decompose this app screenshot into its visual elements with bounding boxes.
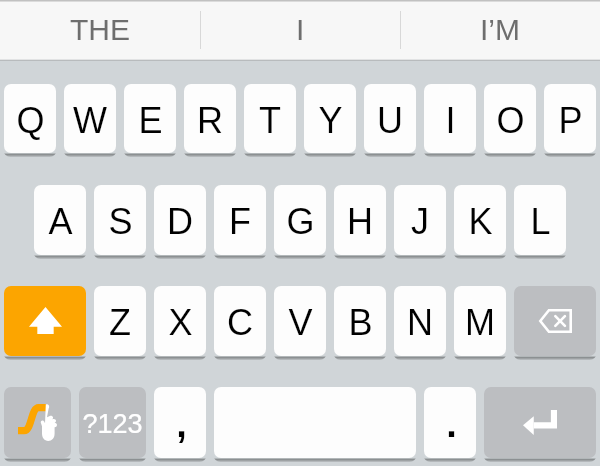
button[interactable]: A <box>34 185 86 255</box>
staticText: A <box>48 201 73 241</box>
button[interactable]: Backspace <box>514 286 596 356</box>
staticText: R <box>197 100 223 140</box>
staticText: U <box>377 100 403 140</box>
button[interactable]: S <box>94 185 146 255</box>
button[interactable]: E <box>124 84 176 153</box>
staticText: T <box>259 100 281 140</box>
button[interactable]: C <box>214 286 266 356</box>
button[interactable]: F <box>214 185 266 255</box>
button[interactable]: J <box>394 185 446 255</box>
button[interactable]: , <box>154 387 206 458</box>
button[interactable]: M <box>454 286 506 356</box>
staticText: , <box>176 403 187 445</box>
staticText: L <box>530 201 551 241</box>
staticText: V <box>288 302 313 342</box>
button[interactable]: Shift <box>4 286 86 356</box>
staticText: B <box>348 302 373 342</box>
button[interactable]: ?123 <box>79 387 146 458</box>
button[interactable]: D <box>154 185 206 255</box>
button[interactable]: G <box>274 185 326 255</box>
button[interactable]: . <box>424 387 476 458</box>
button[interactable]: H <box>334 185 386 255</box>
button[interactable]: V <box>274 286 326 356</box>
staticText: M <box>465 302 495 342</box>
button[interactable]: W <box>64 84 116 153</box>
button[interactable]: R <box>184 84 236 153</box>
button[interactable]: K <box>454 185 506 255</box>
button[interactable]: I <box>424 84 476 153</box>
button[interactable]: Enter <box>484 387 596 458</box>
staticText: P <box>558 100 583 140</box>
staticText: X <box>168 302 193 342</box>
staticText: D <box>167 201 193 241</box>
staticText: J <box>411 201 429 241</box>
button[interactable]: Z <box>94 286 146 356</box>
button[interactable]: N <box>394 286 446 356</box>
button[interactable]: THE <box>0 0 200 60</box>
staticText: E <box>138 100 163 140</box>
staticText: Q <box>16 100 45 140</box>
staticText: H <box>347 201 373 241</box>
button[interactable]: O <box>484 84 536 153</box>
button[interactable]: U <box>364 84 416 153</box>
staticText: C <box>227 302 253 342</box>
button[interactable]: I’M <box>400 0 600 60</box>
staticText: G <box>286 201 315 241</box>
button[interactable]: T <box>244 84 296 153</box>
button[interactable]: B <box>334 286 386 356</box>
staticText: ?123 <box>82 409 143 439</box>
staticText: I <box>445 100 456 140</box>
staticText: Y <box>318 100 343 140</box>
button[interactable]: I <box>200 0 400 60</box>
staticText: I’M <box>480 13 520 47</box>
staticText: K <box>468 201 493 241</box>
button[interactable]: P <box>544 84 596 153</box>
staticText: N <box>407 302 433 342</box>
button[interactable]: L <box>514 185 566 255</box>
staticText: . <box>446 403 457 445</box>
button[interactable]: Gesture typing <box>4 387 71 458</box>
button[interactable]: Y <box>304 84 356 153</box>
staticText: I <box>296 13 305 47</box>
button[interactable]: X <box>154 286 206 356</box>
button[interactable]: Q <box>4 84 56 153</box>
staticText: S <box>108 201 133 241</box>
staticText: F <box>229 201 251 241</box>
staticText: THE <box>70 13 130 47</box>
staticText: W <box>73 100 107 140</box>
staticText: Z <box>109 302 131 342</box>
staticText: O <box>496 100 525 140</box>
